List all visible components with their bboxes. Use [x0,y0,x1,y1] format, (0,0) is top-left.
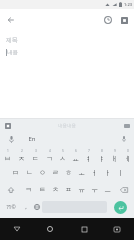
button[interactable]: ㄹ [49,164,62,181]
button[interactable]: 1 [0,147,14,164]
button[interactable]: ㅁ [8,164,22,181]
staticText: ㅕ [85,154,92,163]
staticText: 1 [7,149,9,153]
staticText: 2 [21,149,23,153]
button[interactable]: ㅊ [49,181,62,198]
button[interactable]: ㅋ [21,181,35,198]
staticText: 6 [75,149,77,153]
button[interactable]: Back [10,222,24,236]
staticText: ㅈ [18,154,25,163]
button[interactable]: ㅏ [101,164,114,181]
staticText: ㄹ [52,168,59,177]
staticText: 내용 [7,49,18,56]
button[interactable]: Save [116,12,132,28]
button[interactable]: Voice search [5,133,17,145]
staticText: ㅣ [117,168,124,177]
button[interactable]: Recent apps [77,222,91,236]
button[interactable]: 2 [14,147,28,164]
button[interactable]: Back [3,12,19,28]
staticText: ㅐ [111,154,118,163]
staticText: 9 [114,149,116,153]
button[interactable]: 9 [108,147,121,164]
staticText: ㅍ [65,185,72,194]
button[interactable]: Shift [0,181,21,198]
staticText: ㅋ [25,185,32,194]
button[interactable]: Home [43,222,57,236]
staticText: ㅠ [78,185,85,194]
button[interactable]: 4 [42,147,56,164]
staticText: ㄴ [26,168,33,177]
staticText: 3 [35,149,37,153]
button[interactable]: ㅇ [36,164,49,181]
button[interactable]: ㄴ [22,164,36,181]
button[interactable]: Backspace [114,181,134,198]
button[interactable]: ㅍ [62,181,75,198]
button[interactable]: ㅡ [101,181,114,198]
staticText: 0 [127,149,129,153]
staticText: ㅛ [72,154,79,163]
button[interactable]: 0 [121,147,134,164]
button[interactable]: 6 [69,147,82,164]
button[interactable]: ㅠ [75,181,88,198]
staticText: ㅜ [91,185,98,194]
button[interactable]: ㅌ [35,181,49,198]
staticText: En [28,135,36,143]
button[interactable]: ㅜ [88,181,101,198]
button[interactable]: 8 [95,147,108,164]
staticText: ㄷ [32,154,39,163]
staticText: ㅎ [65,168,72,177]
button[interactable]: Screenshot [110,222,124,236]
staticText: ㅌ [39,185,46,194]
staticText: 7 [88,149,90,153]
staticText: ㅏ [104,168,111,177]
button[interactable]: , [20,198,31,216]
button[interactable]: 3 [28,147,42,164]
staticText: ㅂ [4,154,11,163]
button[interactable]: ㅎ [62,164,75,181]
staticText: ㅑ [98,154,105,163]
staticText: 내용내용 [58,123,76,129]
button[interactable]: Microphone [118,133,130,145]
staticText: , [25,203,27,211]
button[interactable]: Keyboard settings [121,120,132,131]
staticText: ㅡ [104,185,111,194]
staticText: ㄱ [46,154,53,163]
staticText: ㅁ [12,168,19,177]
staticText: ㅅ [59,154,66,163]
button[interactable]: ?1© [2,198,20,216]
staticText: 제목 [6,36,18,44]
staticText: ?1© [6,204,16,211]
button[interactable]: 7 [82,147,95,164]
staticText: ㅇ [39,168,46,177]
button[interactable]: Enter [114,201,127,214]
staticText: ㅔ [124,154,131,163]
button[interactable]: ㅓ [88,164,101,181]
staticText: 1:23 [124,2,132,7]
staticText: 8 [101,149,103,153]
staticText: ㅊ [52,185,59,194]
staticText: ㅗ [78,168,85,177]
button[interactable]: History [100,12,116,28]
staticText: 5 [62,149,64,153]
button[interactable]: ㅗ [75,164,88,181]
button[interactable]: Change language [31,198,42,216]
button[interactable]: 5 [56,147,69,164]
button[interactable]: Clipboard [2,120,13,131]
staticText: 4 [49,149,51,153]
staticText: ㅓ [91,168,98,177]
button[interactable]: ㅣ [114,164,127,181]
